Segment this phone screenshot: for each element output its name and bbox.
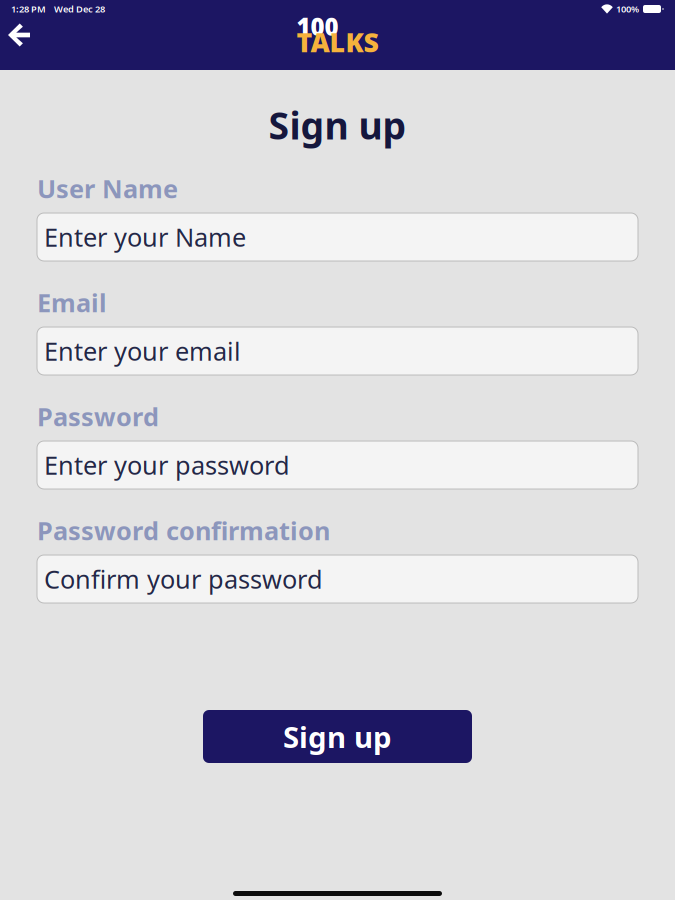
staticText: 100% xyxy=(616,3,639,15)
staticText: TALKS xyxy=(296,24,378,60)
staticText: 1:28 PM xyxy=(11,3,46,15)
staticText: Confirm your password xyxy=(44,562,323,596)
staticText: 100 xyxy=(296,11,338,42)
staticText: Password confirmation xyxy=(37,514,330,547)
staticText: Enter your email xyxy=(44,334,241,368)
button[interactable]: Sign up xyxy=(203,710,472,763)
staticText: Sign up xyxy=(283,717,392,756)
staticText: Email xyxy=(37,286,107,319)
staticText: Password xyxy=(37,400,159,433)
staticText: Enter your Name xyxy=(44,220,246,254)
button[interactable]: Enter your password xyxy=(37,441,638,489)
staticText: Wed Dec 28 xyxy=(54,3,105,15)
staticText: Sign up xyxy=(268,100,406,150)
staticText: User Name xyxy=(37,172,178,205)
button[interactable]: Back xyxy=(0,22,46,65)
button[interactable]: Enter your email xyxy=(37,327,638,375)
button[interactable]: Enter your Name xyxy=(37,213,638,261)
button[interactable]: Confirm your password xyxy=(37,555,638,603)
staticText: Enter your password xyxy=(44,448,290,482)
